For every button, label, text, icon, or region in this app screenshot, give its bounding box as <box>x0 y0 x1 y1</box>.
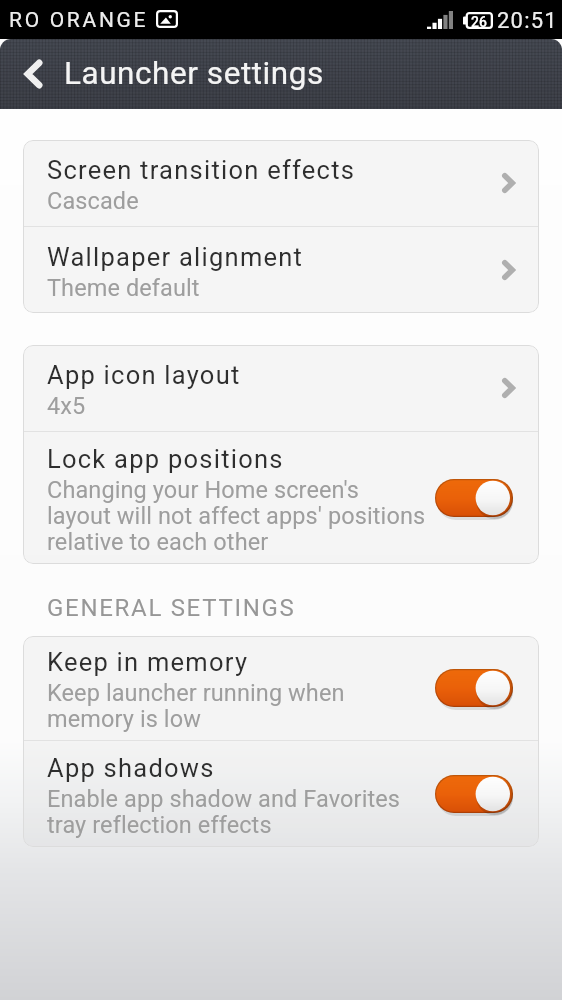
staticText: 20:51 <box>497 8 558 34</box>
staticText: memory is low <box>47 705 201 733</box>
button[interactable]: Toggle on <box>435 479 513 517</box>
staticText: Changing your Home screen's <box>47 476 359 504</box>
staticText: Cascade <box>47 187 139 215</box>
staticText: layout will not affect apps' positions <box>47 502 426 530</box>
staticText: tray reflection effects <box>47 811 272 839</box>
staticText: relative to each other <box>47 528 269 556</box>
staticText: 26 <box>471 14 487 30</box>
staticText: Enable app shadow and Favorites <box>47 785 401 813</box>
button[interactable]: App icon layout <box>23 345 539 431</box>
staticText: RO ORANGE <box>9 8 149 33</box>
button[interactable]: Toggle on <box>435 775 513 813</box>
button[interactable]: Toggle on <box>435 669 513 707</box>
staticText: Keep in memory <box>47 647 249 677</box>
button[interactable]: Keep in memory <box>23 636 539 740</box>
button[interactable]: Back <box>10 39 57 109</box>
staticText: GENERAL SETTINGS <box>47 594 296 622</box>
staticText: Screen transition effects <box>47 155 356 185</box>
staticText: Launcher settings <box>64 55 324 92</box>
button[interactable]: App shadows <box>23 741 539 847</box>
staticText: Keep launcher running when <box>47 679 345 707</box>
staticText: Wallpaper alignment <box>47 242 304 272</box>
staticText: App shadows <box>47 753 215 783</box>
button[interactable]: Wallpaper alignment <box>23 227 539 313</box>
button[interactable]: Lock app positions <box>23 432 539 564</box>
staticText: Theme default <box>47 274 200 302</box>
staticText: App icon layout <box>47 360 241 390</box>
staticText: Lock app positions <box>47 444 284 474</box>
staticText: 4x5 <box>47 392 86 420</box>
button[interactable]: Screen transition effects <box>23 140 539 226</box>
